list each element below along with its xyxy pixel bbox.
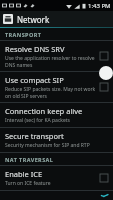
button[interactable]: Use compact SIP: [0, 72, 113, 102]
button[interactable]: Scroll: [99, 66, 113, 80]
staticText: Use compact SIP: [5, 75, 64, 85]
button[interactable]: Network: [0, 11, 113, 27]
staticText: Reduce SIP packets size. May not work on…: [5, 86, 96, 99]
staticText: Resolve DNS SRV: [5, 44, 65, 54]
button[interactable]: Enabled: [99, 194, 109, 197]
staticText: Connection keep alive: [5, 106, 83, 116]
staticText: Security mechanism for SIP and RTP: [5, 142, 90, 149]
staticText: 1:43 PM: [88, 2, 111, 10]
staticText: Use the application resolver to resolve …: [5, 55, 96, 68]
staticText: Interval (sec) for KA packets: [5, 117, 70, 124]
button[interactable]: Connection keep alive: [0, 103, 113, 127]
staticText: Network: [17, 14, 50, 25]
button[interactable]: Disabled: [99, 173, 109, 183]
button[interactable]: Disabled: [99, 82, 109, 92]
button[interactable]: Resolve DNS SRV: [0, 41, 113, 71]
staticText: NAT TRAVERSAL: [5, 156, 54, 163]
staticText: TRANSPORT: [5, 31, 42, 38]
staticText: Secure transport: [5, 131, 64, 141]
staticText: Turn on ICE feature: [5, 180, 51, 187]
button[interactable]: Enable STUN: [0, 191, 113, 200]
button[interactable]: Disabled: [99, 51, 109, 61]
staticText: Enable ICE: [5, 169, 43, 179]
button[interactable]: Secure transport: [0, 128, 113, 152]
button[interactable]: Enable ICE: [0, 166, 113, 190]
